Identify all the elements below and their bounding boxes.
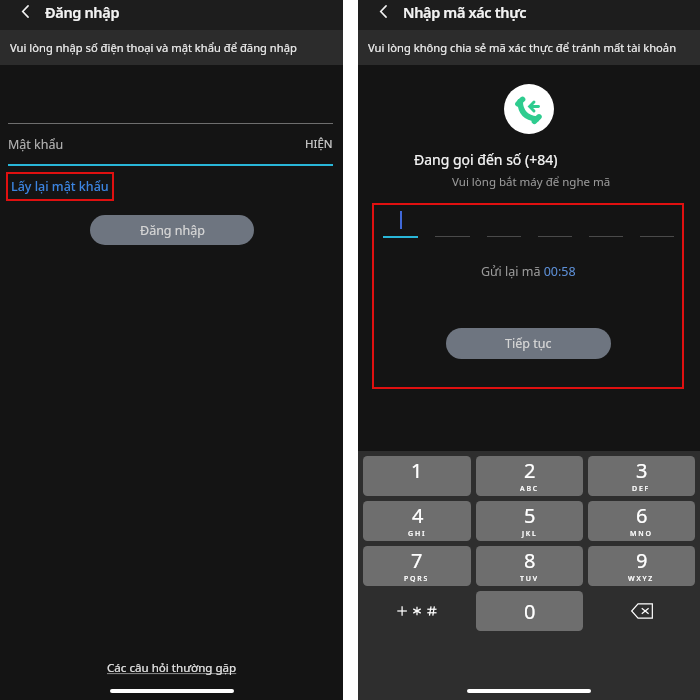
- staticText: 5: [524, 502, 536, 529]
- staticText: Gửi lại mã 00:58: [481, 263, 576, 280]
- staticText: 9: [636, 547, 648, 574]
- staticText: MNO: [630, 529, 653, 539]
- button[interactable]: 3: [588, 456, 695, 496]
- staticText: HIỆN: [305, 136, 333, 152]
- staticText: 1: [411, 457, 423, 484]
- staticText: WXYZ: [628, 574, 655, 584]
- staticText: JKL: [522, 529, 538, 539]
- staticText: Đang gọi đến số (+84): [414, 150, 558, 169]
- staticText: 4: [412, 502, 424, 529]
- staticText: Đăng nhập: [45, 2, 120, 22]
- button[interactable]: 5: [476, 501, 583, 541]
- button[interactable]: 8: [476, 546, 583, 586]
- button[interactable]: Back: [370, 0, 396, 24]
- button[interactable]: 9: [588, 546, 695, 586]
- staticText: Vui lòng bắt máy để nghe mã: [452, 174, 611, 190]
- button[interactable]: Đăng nhập: [90, 215, 254, 245]
- staticText: Vui lòng nhập số điện thoại và mật khẩu …: [10, 40, 297, 55]
- button[interactable]: Backspace: [588, 591, 695, 631]
- staticText: Mật khẩu: [8, 136, 64, 153]
- staticText: Tiếp tục: [505, 335, 552, 352]
- staticText: 6: [636, 502, 648, 529]
- button[interactable]: Các câu hỏi thường gặp: [107, 660, 237, 676]
- button[interactable]: Lấy lại mật khẩu: [6, 172, 114, 201]
- staticText: Đăng nhập: [140, 222, 205, 239]
- staticText: Lấy lại mật khẩu: [11, 178, 109, 195]
- staticText: 8: [524, 547, 536, 574]
- staticText: Nhập mã xác thực: [403, 2, 527, 22]
- staticText: TUV: [520, 574, 539, 584]
- button[interactable]: 0: [476, 591, 583, 631]
- staticText: 2: [524, 457, 536, 484]
- button[interactable]: Symbols: [363, 591, 471, 631]
- button[interactable]: Tiếp tục: [446, 328, 611, 359]
- button[interactable]: 6: [588, 501, 695, 541]
- staticText: PQRS: [404, 574, 430, 584]
- staticText: GHI: [408, 529, 427, 539]
- staticText: Vui lòng không chia sẻ mã xác thực để tr…: [368, 40, 677, 55]
- button[interactable]: 2: [476, 456, 583, 496]
- button[interactable]: 7: [363, 546, 471, 586]
- button[interactable]: 4: [363, 501, 471, 541]
- staticText: 7: [411, 547, 423, 574]
- staticText: 3: [636, 457, 648, 484]
- staticText: DEF: [632, 484, 651, 494]
- button[interactable]: Back: [12, 0, 38, 24]
- staticText: ABC: [520, 484, 540, 494]
- staticText: 0: [524, 598, 536, 625]
- button[interactable]: 1: [363, 456, 471, 496]
